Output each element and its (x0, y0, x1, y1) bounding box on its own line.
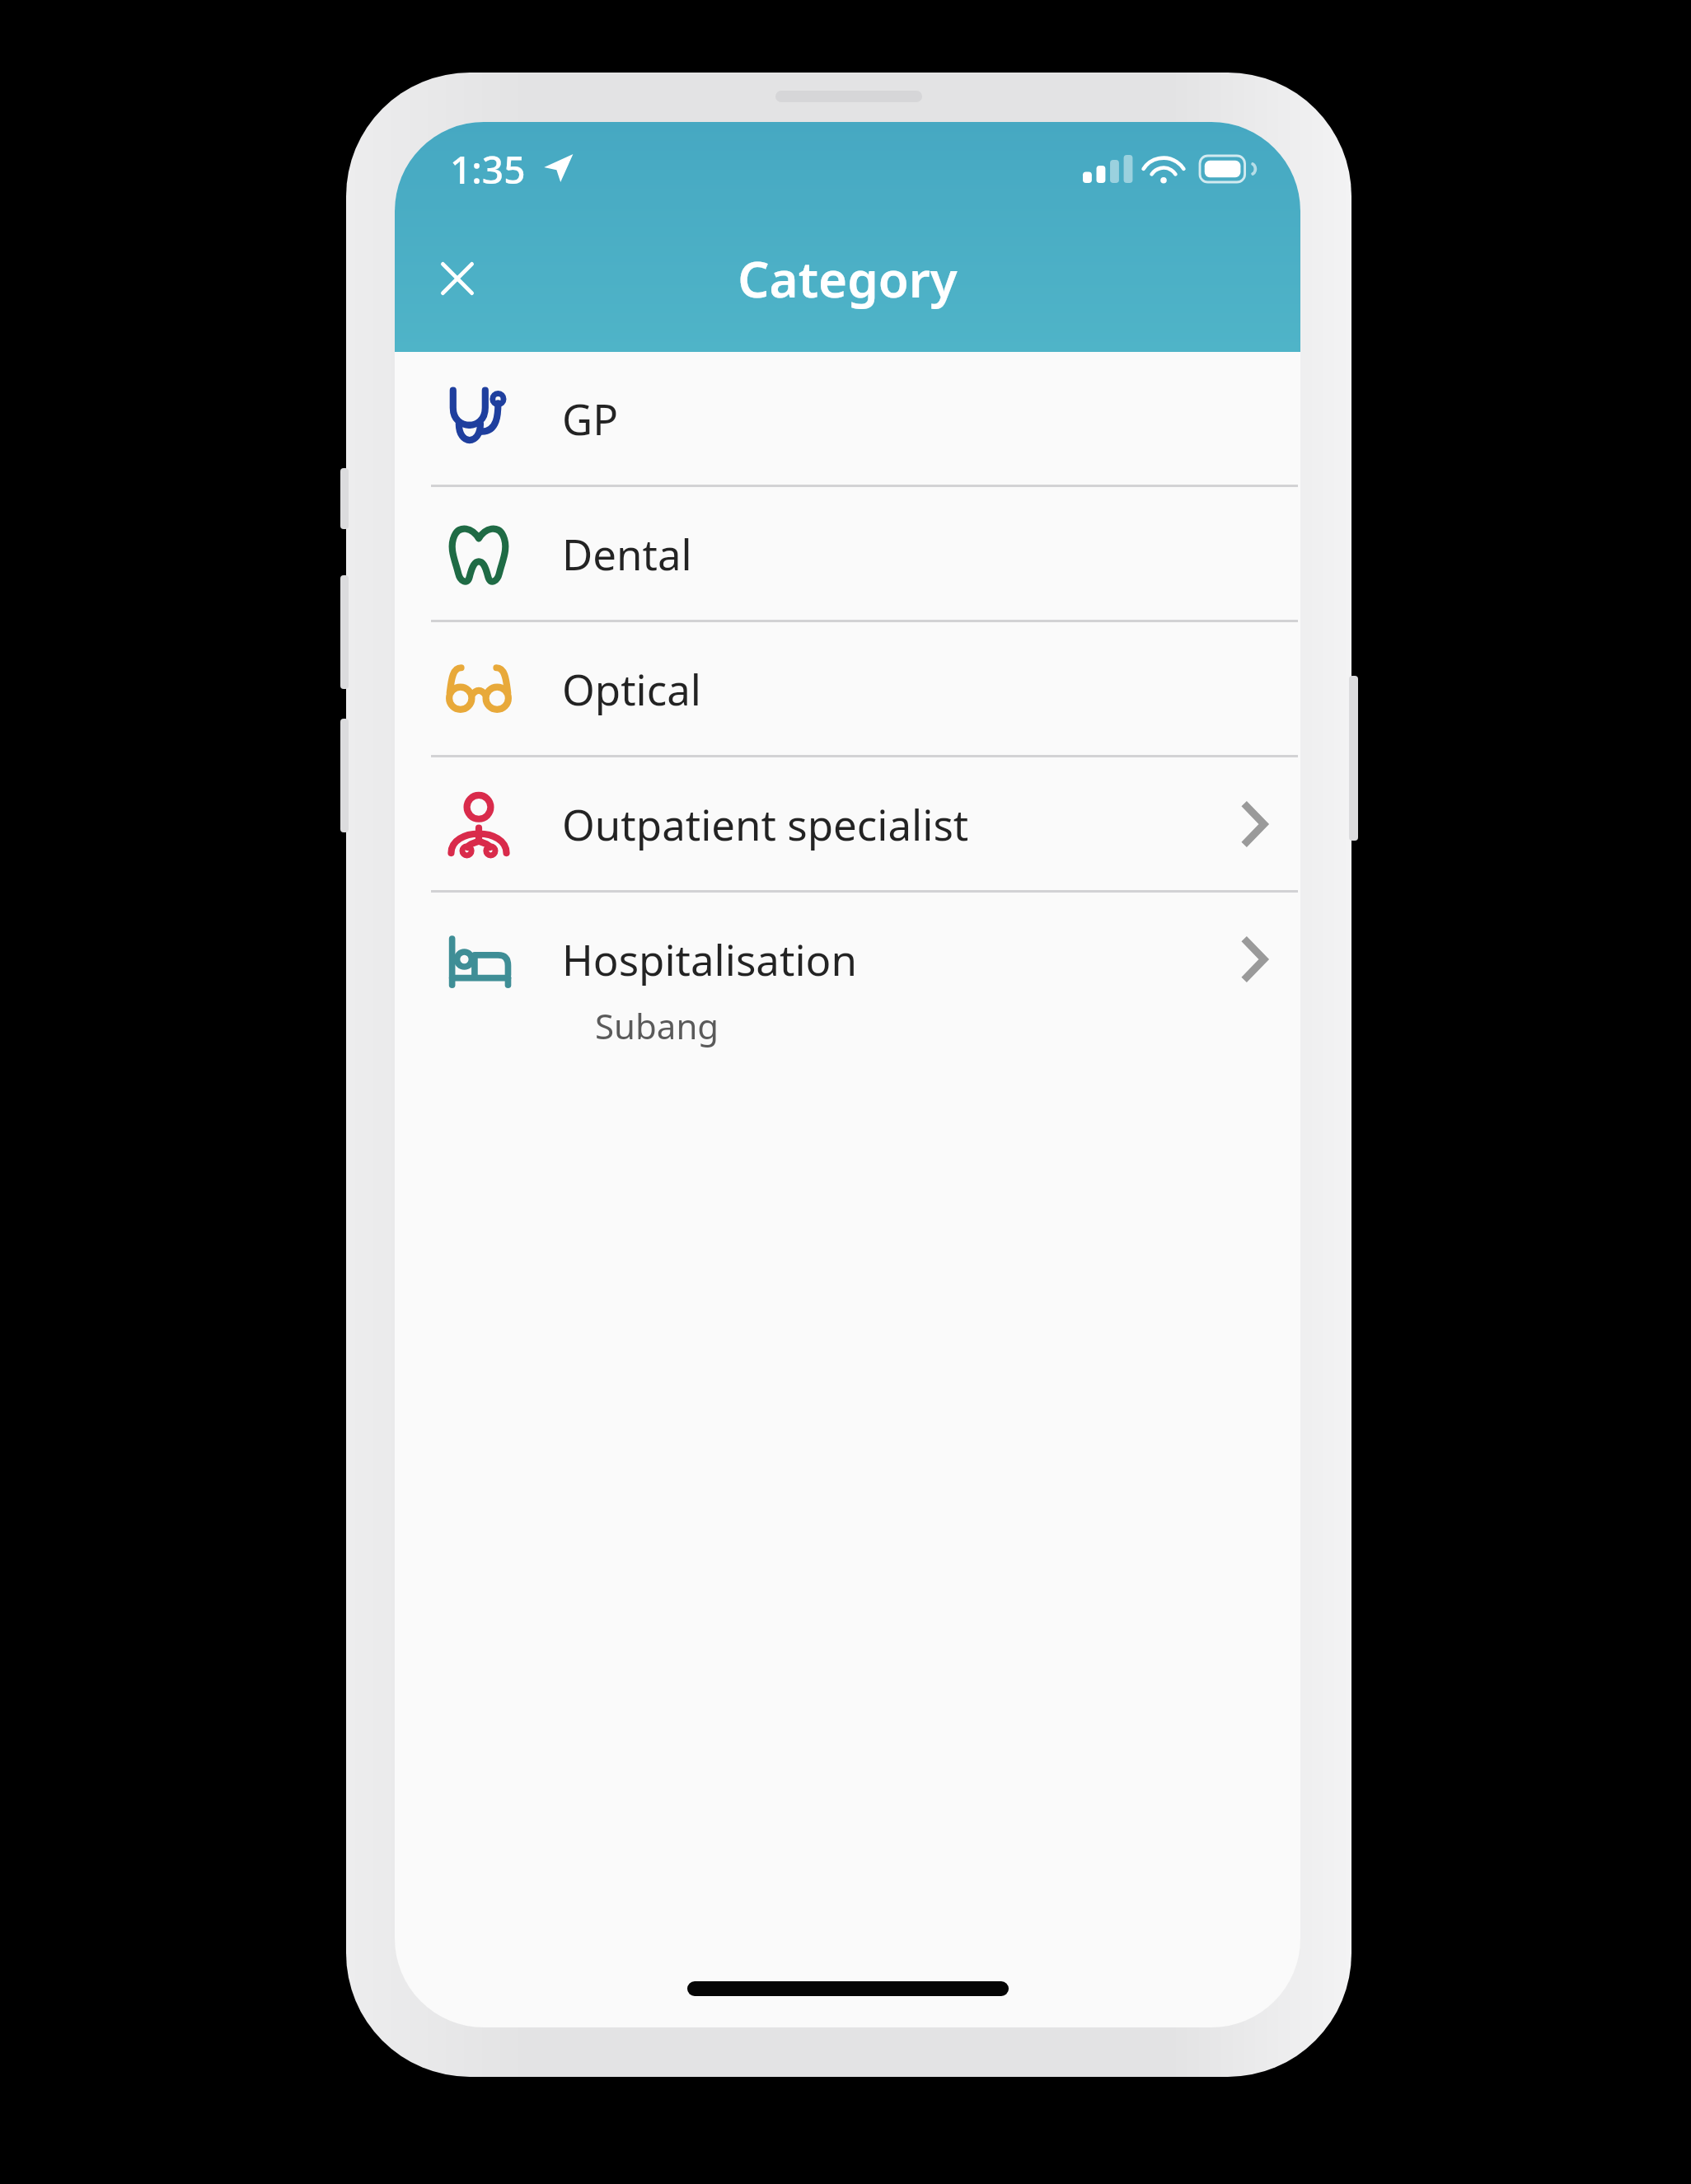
staticText: Subang (595, 1002, 719, 1049)
button[interactable]: Optical (395, 622, 1300, 755)
button[interactable]: Close (413, 234, 502, 323)
staticText: Outpatient specialist (562, 795, 1210, 852)
staticText: Category (738, 245, 958, 312)
button[interactable]: Outpatient specialist (395, 757, 1300, 890)
button[interactable]: GP (395, 352, 1300, 485)
staticText: Optical (562, 660, 1210, 717)
button[interactable]: Hospitalisation (395, 893, 1300, 1072)
staticText: Dental (562, 525, 1210, 582)
staticText: GP (562, 390, 1210, 447)
staticText: 1:35 (450, 143, 526, 195)
button[interactable]: Dental (395, 487, 1300, 620)
staticText: Hospitalisation (562, 930, 1210, 987)
